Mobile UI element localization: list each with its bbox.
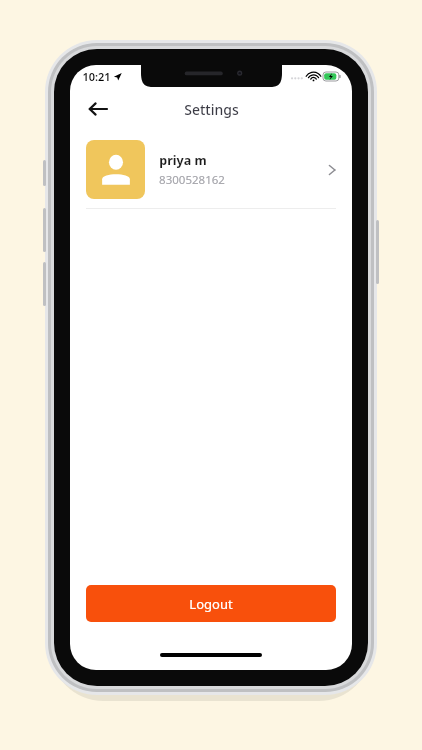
staticText: Settings (184, 100, 239, 119)
button[interactable]: Back (80, 92, 114, 126)
staticText: 8300528162 (159, 172, 225, 188)
button[interactable]: Logout (86, 585, 336, 622)
staticText: Logout (189, 595, 233, 613)
staticText: priya m (159, 152, 207, 169)
button[interactable]: priya m (70, 131, 352, 208)
staticText: 10:21 (82, 69, 111, 84)
